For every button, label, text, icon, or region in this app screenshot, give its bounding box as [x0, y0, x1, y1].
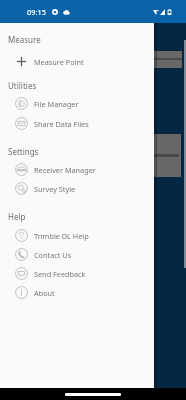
staticText: Contact Us	[34, 250, 72, 260]
button[interactable]: Receiver Manager	[0, 160, 154, 179]
button[interactable]: About	[0, 283, 154, 302]
button[interactable]: Survey Style	[0, 179, 154, 198]
button[interactable]: Share Data Files	[0, 114, 154, 133]
staticText: Utilities	[8, 80, 37, 91]
button[interactable]: Contact Us	[0, 245, 154, 264]
button[interactable]: File Manager	[0, 94, 154, 113]
staticText: Send Feedback	[34, 269, 86, 279]
staticText: Share Data Files	[34, 119, 89, 129]
staticText: 09:15	[27, 7, 46, 17]
button[interactable]: Trimble DL Help	[0, 226, 154, 245]
staticText: Survey Style	[34, 184, 76, 194]
staticText: Settings	[8, 146, 39, 157]
staticText: Measure Point	[34, 57, 84, 67]
button[interactable]: Measure Point	[0, 52, 154, 71]
staticText: Help	[8, 211, 26, 222]
staticText: Trimble DL Help	[34, 231, 89, 241]
staticText: Measure	[8, 34, 41, 45]
staticText: About	[34, 288, 55, 298]
staticText: File Manager	[34, 99, 79, 109]
button[interactable]: Send Feedback	[0, 264, 154, 283]
staticText: Receiver Manager	[34, 165, 96, 175]
